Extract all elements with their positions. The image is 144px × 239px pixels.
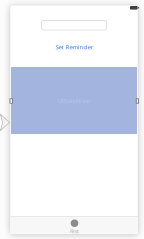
button[interactable]: Set Reminder	[41, 42, 106, 52]
staticText: UIDatePicker	[57, 97, 90, 105]
button[interactable]: First	[53, 219, 95, 236]
staticText: Set Reminder	[55, 43, 92, 51]
staticText: First	[70, 228, 79, 235]
